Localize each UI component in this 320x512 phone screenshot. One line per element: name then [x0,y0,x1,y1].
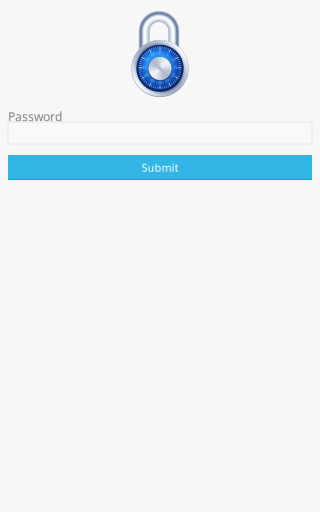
staticText: Password [8,108,62,124]
staticText: 10 [171,58,175,62]
staticText: 50 [145,58,149,62]
staticText: 15 [173,66,177,69]
button[interactable]: Submit [8,155,312,180]
staticText: 0 [159,51,161,54]
staticText: 25 [166,79,170,83]
staticText: 5 [167,53,169,56]
staticText: 20 [171,74,175,77]
staticText: 30 [158,81,162,85]
staticText: 35 [150,79,154,83]
staticText: 55 [150,53,154,56]
staticText: 40 [145,74,149,77]
staticText: 45 [143,66,147,69]
staticText: Submit [141,160,178,175]
